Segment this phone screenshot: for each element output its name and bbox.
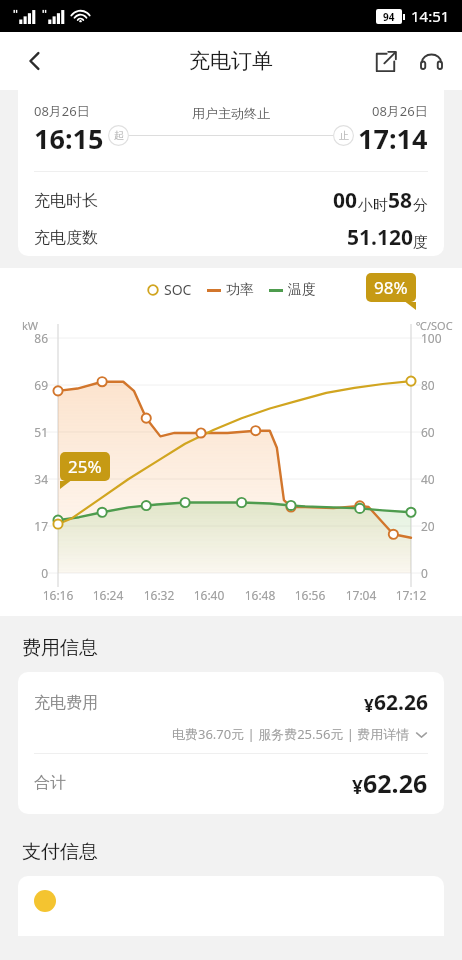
staticText: 用户主动终止: [192, 105, 270, 121]
staticText: 合计: [34, 773, 66, 793]
staticText: 16:24: [84, 587, 132, 603]
staticText: 51: [16, 424, 48, 440]
staticText: 费用信息: [22, 636, 98, 660]
staticText: SOC: [164, 280, 192, 299]
staticText: 40: [421, 471, 435, 487]
staticText: 00: [333, 186, 358, 215]
staticText: 60: [421, 424, 435, 440]
staticText: 80: [421, 377, 435, 393]
button[interactable]: [18, 876, 444, 936]
staticText: 止: [339, 129, 349, 142]
staticText: 充电费用: [34, 693, 98, 713]
staticText: 20: [421, 518, 435, 534]
staticText: 分: [413, 196, 428, 215]
staticText: 16:40: [185, 587, 233, 603]
staticText: 62.26: [363, 766, 428, 800]
staticText: 0: [421, 565, 428, 581]
staticText: 98%: [374, 276, 408, 299]
staticText: 16:32: [135, 587, 183, 603]
button[interactable]: Back: [12, 38, 58, 84]
staticText: 小时: [358, 196, 388, 215]
staticText: 94: [383, 10, 395, 24]
staticText: 17:04: [337, 587, 385, 603]
staticText: 0: [16, 565, 48, 581]
staticText: 08月26日: [34, 102, 90, 120]
staticText: 17:12: [387, 587, 435, 603]
staticText: ¥: [364, 694, 374, 717]
staticText: 16:16: [34, 587, 82, 603]
staticText: 62.26: [374, 688, 428, 717]
staticText: ¥: [352, 774, 363, 800]
staticText: 功率: [226, 281, 254, 299]
staticText: 86: [16, 330, 48, 346]
staticText: 支付信息: [22, 840, 98, 864]
staticText: 充电度数: [34, 228, 98, 248]
staticText: kW: [22, 318, 39, 333]
staticText: 充电订单: [189, 48, 273, 74]
button[interactable]: Customer service: [408, 38, 454, 84]
staticText: 25%: [68, 455, 102, 478]
staticText: 69: [16, 377, 48, 393]
staticText: 51.120: [347, 223, 413, 252]
staticText: 充电时长: [34, 191, 98, 211]
staticText: 16:15: [34, 120, 104, 157]
staticText: 电费36.70元 | 服务费25.56元 | 费用详情: [172, 725, 410, 743]
staticText: 度: [413, 233, 428, 252]
staticText: 14:51: [411, 6, 450, 26]
staticText: 温度: [288, 281, 316, 299]
button[interactable]: 电费36.70元 | 服务费25.56元 | 费用详情: [34, 725, 428, 743]
staticText: 16:48: [236, 587, 284, 603]
staticText: ℃/SOC: [416, 318, 453, 333]
staticText: 起: [114, 129, 124, 142]
button[interactable]: 08月26日: [18, 78, 444, 256]
staticText: 58: [388, 186, 413, 215]
staticText: 16:56: [286, 587, 334, 603]
staticText: 100: [421, 330, 442, 346]
staticText: 17: [16, 518, 48, 534]
staticText: 17:14: [358, 120, 428, 157]
staticText: 08月26日: [372, 102, 428, 120]
staticText: 34: [16, 471, 48, 487]
button[interactable]: Share: [362, 38, 408, 84]
